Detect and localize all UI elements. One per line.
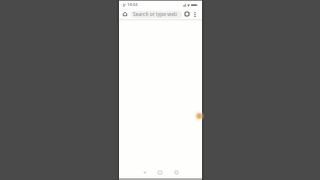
- button[interactable]: Switch tabs: [182, 9, 191, 19]
- button[interactable]: Search or type web address: [131, 11, 182, 18]
- button[interactable]: More options: [191, 9, 199, 19]
- staticText: 18:04: [127, 2, 138, 8]
- button[interactable]: Back: [139, 167, 149, 178]
- button[interactable]: Home: [155, 167, 165, 178]
- staticText: Search or type web address: [133, 11, 182, 18]
- button[interactable]: Recent apps: [171, 167, 181, 178]
- button[interactable]: Home: [120, 9, 130, 19]
